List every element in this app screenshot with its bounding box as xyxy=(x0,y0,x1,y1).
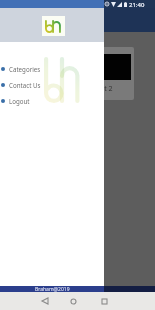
button[interactable]: Logout xyxy=(0,93,104,109)
button[interactable]: Recents xyxy=(96,293,112,309)
staticText: 21:40 xyxy=(129,1,145,9)
button[interactable]: Contact Us xyxy=(0,77,104,93)
button[interactable]: Categories xyxy=(0,61,104,77)
staticText: Product 2 xyxy=(81,84,113,94)
button[interactable]: Home xyxy=(65,293,81,309)
staticText: Braham@2019 xyxy=(35,286,70,292)
staticText: Contact Us xyxy=(9,81,41,89)
staticText: Logout xyxy=(9,97,30,105)
button[interactable]: Back xyxy=(37,293,53,309)
staticText: Categories xyxy=(9,65,41,73)
